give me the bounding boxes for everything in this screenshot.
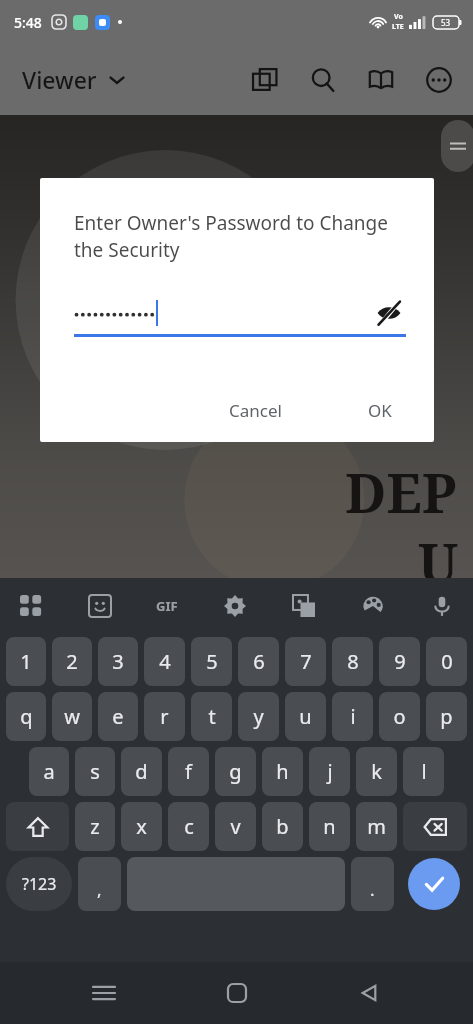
staticText: 6 <box>253 648 265 675</box>
staticText: o <box>393 703 406 730</box>
staticText: Cancel <box>229 399 282 422</box>
button[interactable]: m <box>356 802 397 851</box>
staticText: 0 <box>441 648 453 675</box>
staticText: q <box>20 703 33 730</box>
button[interactable]: , <box>78 857 121 911</box>
button[interactable]: Stickers <box>83 589 117 623</box>
staticText: g <box>229 758 242 785</box>
button[interactable]: 4 <box>144 637 185 686</box>
button[interactable]: Enter <box>408 858 460 910</box>
button[interactable]: Viewer <box>22 64 131 95</box>
button[interactable]: Voice input <box>425 589 459 623</box>
staticText: c <box>184 813 194 840</box>
button[interactable]: 3 <box>98 637 138 686</box>
staticText: s <box>90 758 100 785</box>
staticText: GIF <box>156 597 178 615</box>
button[interactable]: l <box>403 747 444 796</box>
button[interactable]: 0 <box>426 637 467 686</box>
staticText: , <box>97 878 102 901</box>
staticText: a <box>43 758 55 785</box>
staticText: l <box>421 758 427 785</box>
staticText: p <box>440 703 453 730</box>
staticText: DEP <box>345 455 457 529</box>
button[interactable]: p <box>426 692 467 741</box>
staticText: f <box>185 758 192 785</box>
button[interactable]: n <box>309 802 350 851</box>
button[interactable]: Shift <box>6 802 69 851</box>
staticText: 5 <box>206 648 218 675</box>
button[interactable]: z <box>75 802 115 851</box>
button[interactable]: s <box>75 747 115 796</box>
button[interactable]: o <box>379 692 420 741</box>
button[interactable]: GIF <box>152 591 182 621</box>
button[interactable]: Menu handle <box>441 120 473 172</box>
button[interactable]: c <box>168 802 209 851</box>
button[interactable]: OK <box>354 389 406 432</box>
staticText: 8 <box>347 648 359 675</box>
button[interactable]: d <box>121 747 162 796</box>
button[interactable]: 5 <box>191 637 232 686</box>
button[interactable]: Backspace <box>403 802 467 851</box>
button[interactable]: q <box>6 692 46 741</box>
button[interactable]: w <box>52 692 92 741</box>
button[interactable]: f <box>168 747 209 796</box>
staticText: i <box>350 703 356 730</box>
staticText: ?123 <box>22 873 57 895</box>
button[interactable]: k <box>356 747 397 796</box>
button[interactable]: v <box>215 802 256 851</box>
button[interactable]: 1 <box>6 637 46 686</box>
button[interactable]: y <box>238 692 279 741</box>
button[interactable]: j <box>309 747 350 796</box>
staticText: 9 <box>394 648 406 675</box>
button[interactable]: e <box>98 692 138 741</box>
staticText: m <box>367 813 386 840</box>
button[interactable]: b <box>262 802 303 851</box>
button[interactable]: Pages <box>245 60 285 100</box>
staticText: z <box>90 813 100 840</box>
button[interactable]: a <box>29 747 69 796</box>
staticText: t <box>208 703 216 730</box>
button[interactable]: u <box>285 692 326 741</box>
button[interactable]: r <box>144 692 185 741</box>
staticText: U <box>418 525 459 599</box>
button[interactable]: Back <box>340 964 398 1022</box>
staticText: OK <box>368 399 392 422</box>
staticText: v <box>230 813 241 840</box>
button[interactable]: Apps <box>14 589 48 623</box>
button[interactable]: 2 <box>52 637 92 686</box>
button[interactable]: Bookmarks <box>361 60 401 100</box>
staticText: j <box>327 758 333 785</box>
button[interactable]: 6 <box>238 637 279 686</box>
button[interactable]: 7 <box>285 637 326 686</box>
button[interactable]: x <box>121 802 162 851</box>
button[interactable]: Search <box>303 60 343 100</box>
staticText: y <box>253 703 264 730</box>
button[interactable]: . <box>351 857 394 911</box>
staticText: r <box>160 703 169 730</box>
staticText: x <box>136 813 147 840</box>
staticText: 5:48 <box>14 13 42 32</box>
button[interactable]: More options <box>419 60 459 100</box>
button[interactable]: h <box>262 747 303 796</box>
staticText: e <box>112 703 124 730</box>
button[interactable]: 8 <box>332 637 373 686</box>
button[interactable]: t <box>191 692 232 741</box>
staticText: 1 <box>20 648 32 675</box>
staticText: h <box>276 758 289 785</box>
button[interactable]: ?123 <box>6 857 72 911</box>
button[interactable]: Themes <box>356 589 390 623</box>
button[interactable]: i <box>332 692 373 741</box>
staticText: 2 <box>66 648 78 675</box>
button[interactable]: 9 <box>379 637 420 686</box>
staticText: d <box>135 758 148 785</box>
button[interactable]: Cancel <box>215 389 296 432</box>
button[interactable]: Toggle password visibility <box>372 296 406 330</box>
button[interactable]: Home <box>208 964 266 1022</box>
button[interactable]: g <box>215 747 256 796</box>
button[interactable]: Settings <box>218 589 252 623</box>
button[interactable]: Recent apps <box>75 964 133 1022</box>
staticText: Vo <box>394 12 403 22</box>
staticText: 4 <box>159 648 171 675</box>
button[interactable]: Translate <box>287 589 321 623</box>
